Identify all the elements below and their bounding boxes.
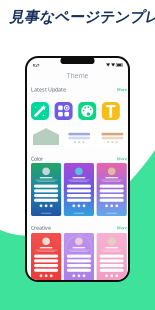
staticText: 見事なページテンプレート: [9, 8, 155, 26]
button[interactable]: More: [117, 156, 127, 161]
button[interactable]: Palette: [78, 102, 96, 120]
button[interactable]: Template preview: [31, 126, 61, 147]
button[interactable]: Magic wand: [31, 102, 49, 120]
button[interactable]: Template: [97, 163, 127, 216]
staticText: Theme: [66, 71, 88, 80]
staticText: More: [117, 87, 127, 92]
staticText: T: [106, 99, 116, 122]
button[interactable]: Template: [64, 233, 94, 286]
button[interactable]: Layouts: [55, 102, 73, 120]
button[interactable]: More: [117, 87, 127, 92]
staticText: More: [117, 156, 127, 161]
staticText: Color: [31, 155, 43, 162]
staticText: 4:21: [32, 62, 39, 68]
staticText: More: [117, 225, 127, 230]
button[interactable]: Text: [102, 102, 120, 120]
button[interactable]: Template: [31, 233, 61, 286]
button[interactable]: More: [117, 225, 127, 230]
button[interactable]: Template: [31, 163, 61, 216]
button[interactable]: Template preview: [64, 126, 94, 147]
button[interactable]: Template preview: [97, 126, 127, 147]
button[interactable]: Template: [97, 233, 127, 286]
staticText: Creative: [31, 224, 51, 231]
button[interactable]: Template: [64, 163, 94, 216]
staticText: Latest Update: [31, 86, 66, 93]
